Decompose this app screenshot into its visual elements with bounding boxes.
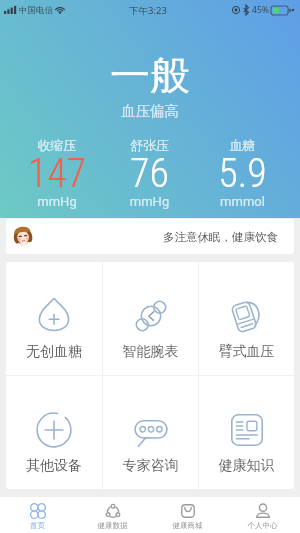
staticText: mmmol — [196, 194, 289, 209]
staticText: 76 — [103, 150, 196, 197]
other: Health assistant — [12, 225, 34, 249]
staticText: 下午3:23 — [129, 4, 167, 17]
staticText: 健康知识 — [199, 457, 294, 475]
staticText: 多注意休眠，健康饮食 — [163, 230, 278, 244]
button[interactable]: 健康知识 — [199, 376, 294, 489]
staticText: 无创血糖 — [6, 343, 102, 361]
button[interactable]: 臂式血压 — [199, 262, 294, 375]
button[interactable]: 智能腕表 — [103, 262, 198, 375]
staticText: 147 — [11, 150, 103, 197]
staticText: 舒张压 — [103, 137, 196, 153]
button[interactable]: 其他设备 — [6, 376, 102, 489]
staticText: 个人中心 — [225, 521, 300, 530]
button[interactable]: 无创血糖 — [6, 262, 102, 375]
button[interactable]: 个人中心 — [225, 497, 300, 533]
staticText: 血压偏高 — [0, 102, 300, 120]
button[interactable]: 专家咨询 — [103, 376, 198, 489]
staticText: 一般 — [0, 50, 300, 100]
staticText: 血糖 — [196, 137, 289, 153]
button[interactable]: 健康商城 — [150, 497, 225, 533]
staticText: 专家咨询 — [103, 457, 198, 475]
staticText: 其他设备 — [6, 457, 102, 475]
staticText: 健康商城 — [150, 521, 225, 530]
staticText: mmHg — [11, 194, 103, 209]
button[interactable]: 首页 — [0, 497, 75, 533]
staticText: mmHg — [103, 194, 196, 209]
staticText: 智能腕表 — [103, 343, 198, 361]
staticText: 健康数据 — [75, 521, 150, 530]
staticText: 首页 — [0, 521, 75, 530]
staticText: 45% — [252, 4, 269, 16]
staticText: 臂式血压 — [199, 343, 294, 361]
button[interactable]: 健康数据 — [75, 497, 150, 533]
staticText: 5.9 — [196, 150, 289, 197]
staticText: 中国电信 — [19, 5, 53, 16]
staticText: 收缩压 — [11, 137, 103, 153]
button[interactable]: Health assistant — [6, 219, 294, 254]
